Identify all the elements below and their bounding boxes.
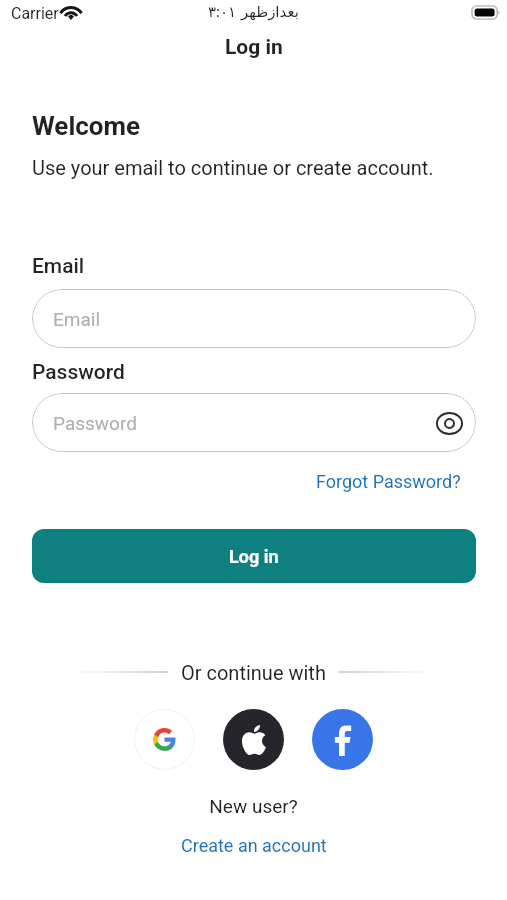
staticText: بعدازظهر bbox=[241, 3, 299, 20]
button[interactable]: Email bbox=[32, 289, 476, 348]
button[interactable]: Password bbox=[32, 393, 476, 452]
staticText: Welcome bbox=[32, 111, 141, 141]
staticText: Carrier bbox=[11, 4, 59, 23]
staticText: New user? bbox=[0, 795, 507, 817]
staticText: Password bbox=[32, 360, 125, 385]
button[interactable]: Create an account bbox=[171, 832, 337, 859]
staticText: Forgot Password? bbox=[316, 471, 461, 492]
staticText: Log in bbox=[229, 546, 279, 567]
staticText: ۳:۰۱ bbox=[208, 3, 237, 21]
button[interactable]: Log in bbox=[32, 529, 476, 583]
button[interactable]: Continue with Google bbox=[134, 709, 195, 770]
button[interactable]: Continue with Apple bbox=[223, 709, 284, 770]
staticText: Create an account bbox=[181, 835, 327, 856]
button[interactable]: Continue with Facebook bbox=[312, 709, 373, 770]
button[interactable]: Show password bbox=[429, 403, 469, 443]
staticText: Email bbox=[32, 254, 85, 279]
button[interactable]: Forgot Password? bbox=[301, 467, 476, 496]
staticText: Email bbox=[53, 308, 101, 330]
staticText: Or continue with bbox=[181, 661, 326, 683]
staticText: Password bbox=[53, 412, 137, 434]
staticText: Log in bbox=[225, 35, 283, 60]
staticText: Use your email to continue or create acc… bbox=[32, 156, 434, 179]
